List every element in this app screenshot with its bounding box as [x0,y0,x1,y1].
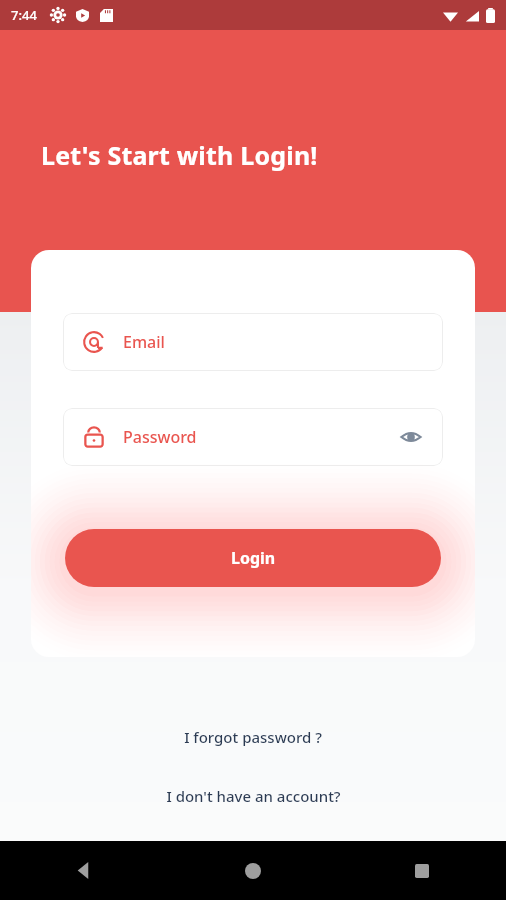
button[interactable]: Login [65,529,441,587]
button[interactable]: Recents [337,841,506,900]
button[interactable]: I don't have an account? [156,781,351,811]
staticText: Let's Start with Login! [41,138,318,172]
staticText: I don't have an account? [166,786,341,806]
button[interactable]: Show password [397,423,425,451]
staticText: 7:44 [11,6,37,24]
button[interactable]: Home [168,841,337,900]
button[interactable]: I forgot password ? [174,722,332,752]
staticText: Login [231,547,276,569]
button[interactable]: Password [63,408,443,466]
button[interactable]: Back [0,841,168,900]
staticText: Email [123,331,165,353]
button[interactable]: Email [63,313,443,371]
staticText: I forgot password ? [184,727,322,747]
staticText: Password [123,426,197,448]
